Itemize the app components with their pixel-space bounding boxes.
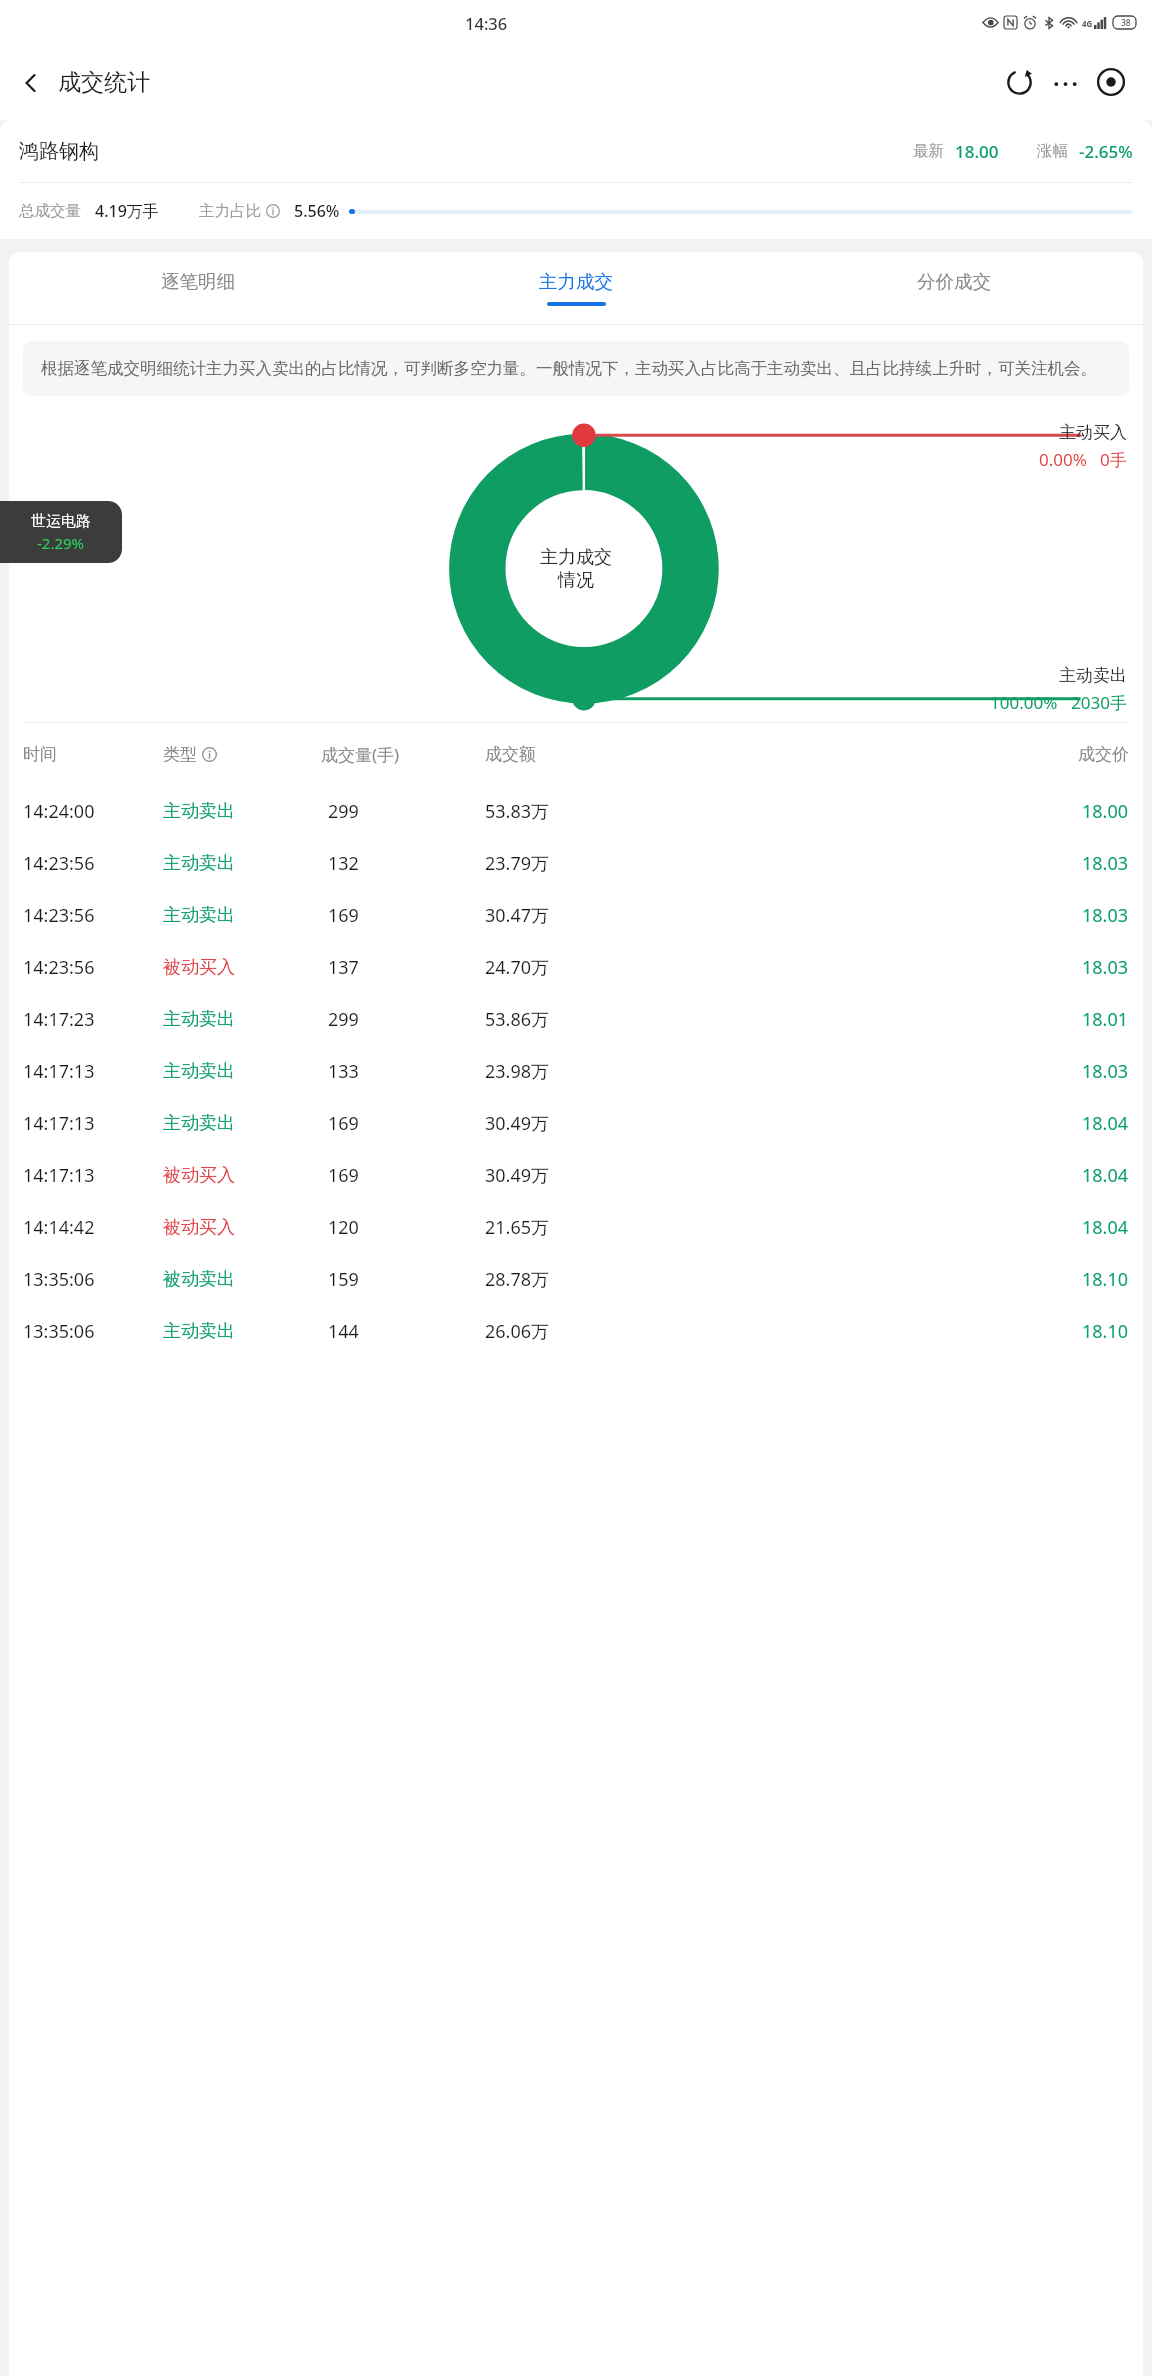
staticText: 根据逐笔成交明细统计主力买入卖出的占比情况，可判断多空力量。一般情况下，主动买入… xyxy=(41,358,1097,379)
staticText: 2030手 xyxy=(1071,691,1127,714)
staticText: 53.83万 xyxy=(485,799,550,824)
staticText: 23.98万 xyxy=(485,1059,550,1084)
staticText: 成交统计 xyxy=(58,68,150,97)
staticText: 18.03 xyxy=(1082,955,1129,980)
staticText: 13:35:06 xyxy=(23,1319,95,1344)
staticText: 100.00% xyxy=(990,691,1058,714)
staticText: 涨幅 xyxy=(1037,141,1068,161)
staticText: -2.65% xyxy=(1079,140,1133,163)
staticText: 主动卖出 xyxy=(163,1320,235,1343)
staticText: 情况 xyxy=(558,569,594,592)
staticText: 18.04 xyxy=(1082,1163,1129,1188)
staticText: 类型 xyxy=(163,744,197,765)
staticText: 主动卖出 xyxy=(163,1112,235,1135)
staticText: 时间 xyxy=(23,744,57,765)
staticText: 主动买入 xyxy=(1059,422,1127,443)
staticText: 38 xyxy=(1121,17,1131,29)
staticText: 30.47万 xyxy=(485,903,550,928)
staticText: 主动卖出 xyxy=(163,852,235,875)
button[interactable]: 13:35:06 xyxy=(9,1253,1143,1305)
staticText: 被动买入 xyxy=(163,1216,235,1239)
button[interactable]: 世运电路 xyxy=(0,501,122,563)
staticText: 被动买入 xyxy=(163,956,235,979)
staticText: 鸿路钢构 xyxy=(19,139,99,164)
staticText: 53.86万 xyxy=(485,1007,550,1032)
staticText: 21.65万 xyxy=(485,1215,550,1240)
staticText: 169 xyxy=(328,1111,359,1136)
staticText: 分价成交 xyxy=(917,270,991,293)
staticText: 14:23:56 xyxy=(23,955,95,980)
button[interactable]: 14:23:56 xyxy=(9,837,1143,889)
staticText: 4G xyxy=(1082,18,1093,29)
staticText: 世运电路 xyxy=(31,512,91,531)
staticText: 主力成交 xyxy=(540,546,612,569)
staticText: 18.03 xyxy=(1082,851,1129,876)
staticText: 主力占比 xyxy=(199,201,261,221)
staticText: 4.19万手 xyxy=(95,200,159,222)
staticText: 18.04 xyxy=(1082,1215,1129,1240)
staticText: 137 xyxy=(328,955,359,980)
button[interactable]: 14:17:23 xyxy=(9,993,1143,1045)
staticText: 30.49万 xyxy=(485,1111,550,1136)
staticText: 主动卖出 xyxy=(163,1008,235,1031)
staticText: 总成交量 xyxy=(19,201,81,221)
staticText: 18.10 xyxy=(1082,1267,1129,1292)
staticText: 0.00% xyxy=(1039,448,1087,471)
staticText: 299 xyxy=(328,1007,359,1032)
staticText: 18.01 xyxy=(1082,1007,1129,1032)
button[interactable]: 分价成交 xyxy=(765,252,1143,324)
staticText: -2.29% xyxy=(37,533,85,553)
staticText: 28.78万 xyxy=(485,1267,550,1292)
button[interactable]: 14:23:56 xyxy=(9,941,1143,993)
button[interactable]: 14:24:00 xyxy=(9,785,1143,837)
staticText: 299 xyxy=(328,799,359,824)
staticText: 被动卖出 xyxy=(163,1268,235,1291)
other: Back xyxy=(20,72,42,94)
staticText: 120 xyxy=(328,1215,359,1240)
staticText: 14:14:42 xyxy=(23,1215,95,1240)
staticText: 最新 xyxy=(913,141,944,161)
button[interactable]: 14:14:42 xyxy=(9,1201,1143,1253)
staticText: 14:17:13 xyxy=(23,1059,95,1084)
staticText: 169 xyxy=(328,1163,359,1188)
staticText: 18.03 xyxy=(1082,1059,1129,1084)
button[interactable]: 主力成交 xyxy=(387,252,765,324)
staticText: 成交额 xyxy=(485,744,536,765)
staticText: 成交量(手) xyxy=(321,743,400,766)
button[interactable]: 逐笔明细 xyxy=(9,252,387,324)
staticText: 主动卖出 xyxy=(163,1060,235,1083)
button[interactable]: Back xyxy=(14,62,156,103)
button[interactable]: More xyxy=(1042,59,1088,105)
staticText: 18.00 xyxy=(955,140,999,163)
staticText: 144 xyxy=(328,1319,359,1344)
staticText: 主动卖出 xyxy=(1059,665,1127,686)
staticText: 18.03 xyxy=(1082,903,1129,928)
staticText: 14:23:56 xyxy=(23,851,95,876)
button[interactable]: 14:17:13 xyxy=(9,1149,1143,1201)
button[interactable]: 14:17:13 xyxy=(9,1097,1143,1149)
staticText: 30.49万 xyxy=(485,1163,550,1188)
staticText: 133 xyxy=(328,1059,359,1084)
staticText: 被动买入 xyxy=(163,1164,235,1187)
staticText: 14:23:56 xyxy=(23,903,95,928)
staticText: 主动卖出 xyxy=(163,800,235,823)
staticText: 5.56% xyxy=(294,200,340,222)
staticText: 132 xyxy=(328,851,359,876)
button[interactable]: 14:23:56 xyxy=(9,889,1143,941)
staticText: 18.04 xyxy=(1082,1111,1129,1136)
staticText: 18.00 xyxy=(1082,799,1129,824)
staticText: 23.79万 xyxy=(485,851,550,876)
staticText: 成交价 xyxy=(1078,744,1129,765)
button[interactable]: 14:17:13 xyxy=(9,1045,1143,1097)
staticText: 14:17:13 xyxy=(23,1111,95,1136)
staticText: 逐笔明细 xyxy=(161,270,235,293)
staticText: 主动卖出 xyxy=(163,904,235,927)
button[interactable]: Refresh xyxy=(996,59,1042,105)
button[interactable]: Record xyxy=(1088,59,1134,105)
staticText: 14:36 xyxy=(465,12,508,34)
staticText: 26.06万 xyxy=(485,1319,550,1344)
staticText: 主力成交 xyxy=(539,270,613,293)
staticText: 14:17:13 xyxy=(23,1163,95,1188)
staticText: 14:24:00 xyxy=(23,799,95,824)
button[interactable]: 13:35:06 xyxy=(9,1305,1143,1357)
